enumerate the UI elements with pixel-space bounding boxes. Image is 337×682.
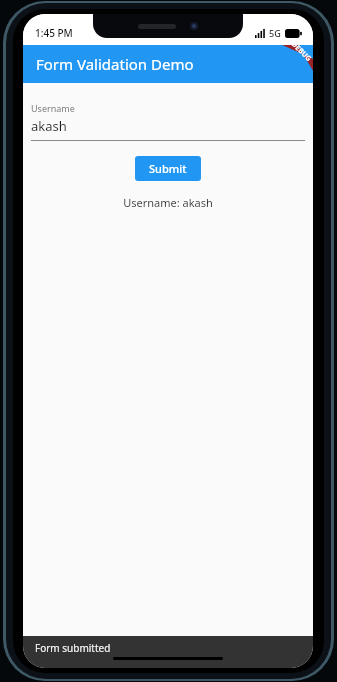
staticText: 5G xyxy=(269,27,281,39)
staticText: 1:45 PM xyxy=(35,26,73,40)
button[interactable]: Username xyxy=(31,102,305,141)
button[interactable]: Submit xyxy=(135,156,201,181)
staticText: Username: akash xyxy=(23,195,313,210)
staticText: Form submitted xyxy=(35,641,111,655)
other: Cellular signal xyxy=(255,29,266,38)
staticText: Form Validation Demo xyxy=(36,54,194,74)
other: Battery xyxy=(285,29,302,38)
staticText: Username xyxy=(31,102,75,114)
staticText: Submit xyxy=(149,161,187,176)
staticText: akash xyxy=(31,117,67,135)
staticText: DEBUG xyxy=(289,40,313,64)
